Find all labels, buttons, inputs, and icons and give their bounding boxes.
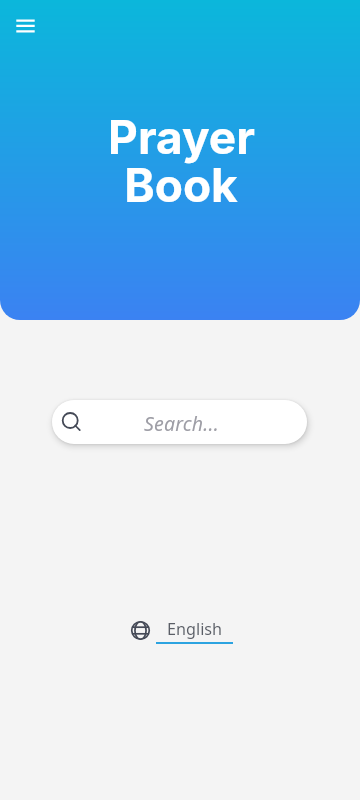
staticText: Book	[124, 157, 238, 213]
button[interactable]: English	[126, 615, 236, 649]
staticText: English	[167, 618, 223, 640]
button[interactable]: Search prayers	[52, 400, 307, 444]
staticText: Search...	[144, 410, 219, 437]
staticText: Prayer	[108, 109, 255, 165]
button[interactable]: Open navigation menu	[8, 8, 42, 42]
